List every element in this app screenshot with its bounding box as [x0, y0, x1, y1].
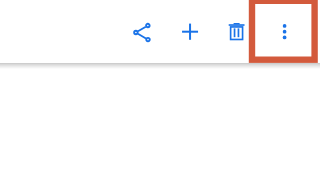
button[interactable]: Add — [165, 8, 213, 56]
button[interactable]: Delete — [213, 8, 261, 56]
button[interactable]: More options — [261, 8, 309, 56]
button[interactable]: Share — [117, 8, 165, 56]
